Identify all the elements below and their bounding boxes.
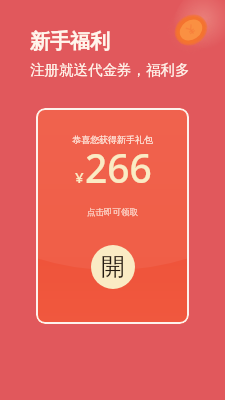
button[interactable]: 恭喜您获得新手礼包 — [36, 108, 189, 324]
staticText: 新手福利 — [30, 29, 110, 54]
staticText: ¥ — [75, 167, 84, 187]
staticText: 開 — [101, 252, 125, 282]
staticText: 恭喜您获得新手礼包 — [36, 134, 189, 145]
button[interactable]: 開 领取红包 — [91, 245, 135, 289]
staticText: 266 — [85, 141, 152, 194]
staticText: 点击即可领取 — [36, 207, 189, 218]
staticText: 注册就送代金券，福利多 — [30, 61, 190, 79]
